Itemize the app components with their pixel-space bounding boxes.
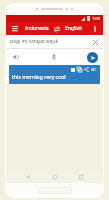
button[interactable]: More options: [90, 24, 99, 33]
button[interactable]: Voice input: [49, 52, 59, 62]
button[interactable]: Speak translation: [90, 66, 97, 73]
button[interactable]: Back: [23, 172, 33, 182]
button[interactable]: Recent apps: [76, 172, 86, 182]
staticText: 1:09: [92, 16, 100, 21]
button[interactable]: Indonesia: [25, 25, 49, 32]
button[interactable]: pagi ini sangat sejuk: [6, 35, 103, 48]
button[interactable]: Listen: [11, 52, 21, 62]
staticText: Indonesia: [25, 25, 49, 32]
button[interactable]: Save: [69, 66, 76, 73]
button[interactable]: Copy: [76, 66, 83, 73]
button[interactable]: Share: [83, 66, 90, 73]
button[interactable]: English: [65, 25, 83, 32]
button[interactable]: Clear text: [91, 38, 99, 46]
button[interactable]: Save: [9, 65, 100, 84]
button[interactable]: Menu: [10, 24, 19, 33]
button[interactable]: Home button: [38, 187, 72, 194]
button[interactable]: Home: [50, 172, 60, 182]
staticText: pagi ini sangat sejuk: [10, 38, 91, 45]
button[interactable]: Translate: [87, 52, 98, 63]
staticText: this morning very cool: [12, 74, 66, 81]
staticText: English: [65, 25, 83, 32]
button[interactable]: Swap languages: [53, 25, 61, 33]
